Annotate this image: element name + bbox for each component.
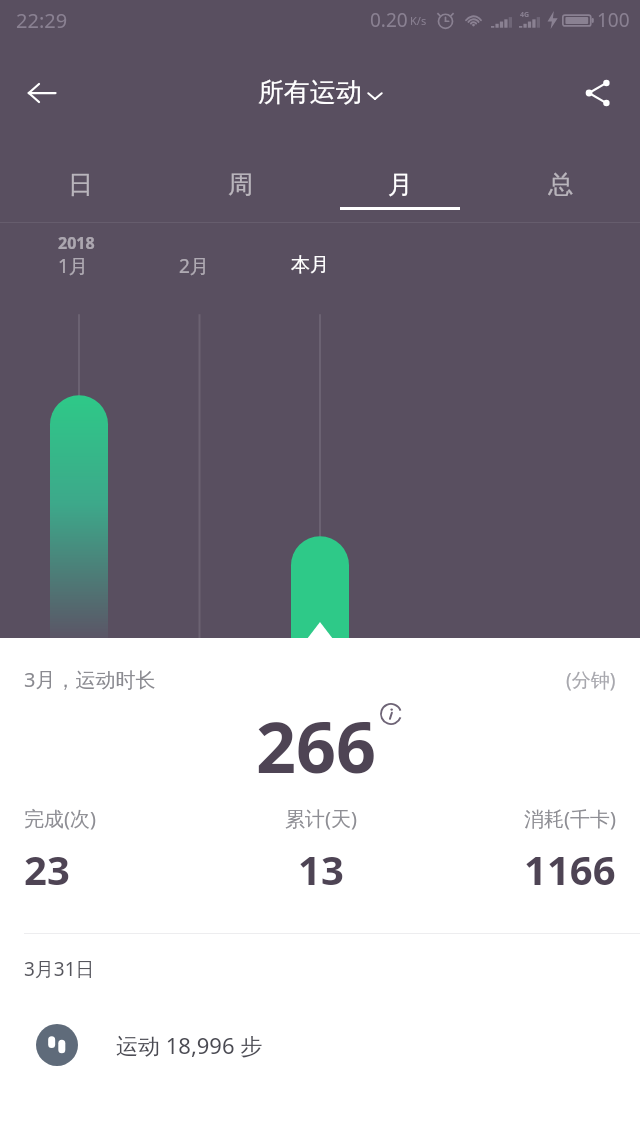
staticText: 累计(天)	[285, 805, 357, 832]
staticText: 4G	[520, 10, 530, 20]
staticText: 13	[298, 842, 344, 896]
staticText: 运动 18,996 步	[116, 1030, 263, 1060]
staticText: 1166	[524, 842, 616, 896]
button[interactable]: 日	[0, 145, 160, 223]
staticText: 2018	[58, 232, 95, 254]
button[interactable]: 周	[160, 145, 320, 223]
staticText: 周	[228, 169, 253, 200]
staticText: 100	[597, 7, 630, 33]
button[interactable]: 消耗(千卡)	[419, 805, 616, 896]
button[interactable]: 完成(次)	[24, 805, 222, 896]
staticText: 日	[68, 169, 93, 200]
button[interactable]: 所有运动	[258, 76, 383, 109]
staticText: 266	[256, 698, 377, 793]
staticText: 1月	[58, 253, 88, 279]
button[interactable]: 累计(天)	[222, 805, 419, 896]
staticText: 3月，运动时长	[24, 666, 156, 693]
staticText: 3月31日	[24, 956, 95, 982]
staticText: 总	[548, 169, 573, 200]
button[interactable]: Share	[570, 65, 626, 121]
staticText: 2月	[179, 253, 209, 279]
button[interactable]: Info	[377, 700, 405, 728]
staticText: 本月	[291, 253, 329, 277]
staticText: 消耗(千卡)	[524, 805, 616, 832]
staticText: 0.20	[370, 7, 408, 33]
staticText: 月	[388, 169, 413, 200]
button[interactable]: Back	[14, 65, 70, 121]
staticText: 22:29	[16, 7, 68, 34]
staticText: 完成(次)	[24, 805, 96, 832]
staticText: 23	[24, 842, 70, 896]
button[interactable]: 运动 18,996 步	[0, 1002, 640, 1088]
staticText: 所有运动	[258, 76, 362, 109]
staticText: K/s	[410, 13, 427, 28]
button[interactable]: 月	[320, 145, 480, 223]
staticText: (分钟)	[566, 667, 616, 693]
button[interactable]: 总	[480, 145, 640, 223]
